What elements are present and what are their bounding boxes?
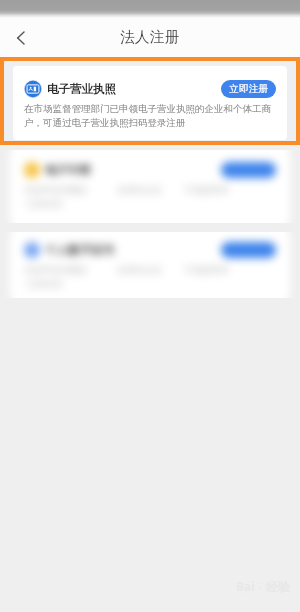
staticText: 可直接登录 <box>184 184 229 195</box>
staticText: 电子营业执照 <box>47 82 116 96</box>
staticText: 个人数字证书 <box>45 243 114 257</box>
staticText: 可直接登录 <box>184 264 229 275</box>
button[interactable]: 个人数字证书 <box>0 232 300 298</box>
staticText: 法人注册 <box>120 28 180 47</box>
button[interactable]: 电子印章 <box>0 150 300 223</box>
staticText: 在市场监督管理部门已申领电子营业执照的企业和个体工商户，可通过电子营业执照扫码登… <box>24 103 276 129</box>
staticText: Bai <box>236 578 255 594</box>
button[interactable]: 立即注册 <box>221 80 276 98</box>
staticText: 电子印章 <box>45 163 91 177</box>
button[interactable]: Back <box>6 24 34 52</box>
button[interactable]: 电子营业执照 <box>4 61 296 141</box>
staticText: 立即注册 <box>229 83 269 95</box>
